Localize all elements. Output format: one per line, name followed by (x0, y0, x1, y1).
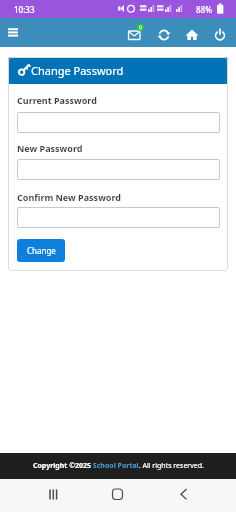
button[interactable] (150, 18, 178, 47)
staticText: Change Password (31, 63, 124, 78)
button[interactable] (78, 479, 157, 512)
staticText: Current Password (17, 94, 97, 106)
button[interactable] (17, 207, 220, 228)
staticText: Confirm New Password (17, 191, 121, 203)
button[interactable]: Change (17, 239, 65, 262)
button[interactable] (206, 18, 234, 47)
button[interactable] (0, 18, 28, 47)
button[interactable] (122, 18, 150, 47)
button[interactable] (178, 18, 206, 47)
staticText: 10:33 (14, 4, 35, 15)
staticText: New Password (17, 142, 83, 154)
button[interactable] (17, 112, 220, 133)
button[interactable] (17, 159, 220, 180)
button[interactable] (157, 479, 236, 512)
button[interactable] (0, 479, 78, 512)
staticText: 88% (196, 4, 212, 15)
staticText: Copyright ©2025 School Portal. All right… (33, 461, 204, 471)
staticText: Change (27, 245, 56, 256)
